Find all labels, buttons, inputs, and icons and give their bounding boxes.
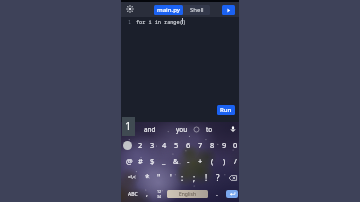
- button[interactable]: !: [200, 169, 212, 186]
- staticText: English: [179, 191, 197, 198]
- staticText: 5: [174, 140, 179, 150]
- button[interactable]: Backspace: [227, 169, 239, 186]
- staticText: $: [150, 156, 155, 166]
- button[interactable]: ,: [141, 186, 153, 202]
- button[interactable]: and: [141, 122, 159, 137]
- staticText: 6: [186, 140, 191, 150]
- button[interactable]: #: [134, 153, 146, 169]
- button[interactable]: ?: [212, 169, 224, 186]
- staticText: /: [234, 156, 237, 166]
- button[interactable]: Voice input: [229, 125, 237, 133]
- button[interactable]: 4: [158, 137, 170, 153]
- staticText: -: [187, 156, 190, 166]
- button[interactable]: More symbols: [125, 169, 139, 186]
- staticText: Run: [220, 106, 232, 114]
- staticText: ": [157, 172, 161, 183]
- staticText: 1: [125, 118, 132, 133]
- button[interactable]: @: [123, 153, 135, 169]
- staticText: ?: [216, 172, 220, 183]
- button[interactable]: ): [218, 153, 230, 169]
- staticText: 3: [150, 140, 155, 150]
- staticText: @: [126, 156, 133, 166]
- staticText: +: [198, 156, 203, 166]
- button[interactable]: :: [176, 169, 188, 186]
- button[interactable]: ;: [188, 169, 200, 186]
- staticText: 4: [162, 140, 167, 150]
- button[interactable]: 9: [218, 137, 230, 153]
- button[interactable]: $: [146, 153, 158, 169]
- button[interactable]: main.py: [154, 5, 183, 15]
- button[interactable]: 3: [146, 137, 158, 153]
- staticText: ): [223, 156, 226, 166]
- button[interactable]: .: [211, 186, 223, 202]
- button[interactable]: Numbers: [153, 186, 165, 202]
- staticText: =\<: [128, 174, 136, 181]
- staticText: Shell: [190, 6, 204, 14]
- button[interactable]: Clipboard: [193, 126, 200, 133]
- staticText: (: [211, 156, 214, 166]
- button[interactable]: _: [158, 153, 170, 169]
- button[interactable]: you: [173, 122, 191, 137]
- button[interactable]: -: [182, 153, 194, 169]
- button[interactable]: &: [170, 153, 182, 169]
- button[interactable]: 7: [194, 137, 206, 153]
- button[interactable]: Shell: [183, 5, 210, 15]
- staticText: 12: [157, 189, 162, 194]
- button[interactable]: ABC: [125, 186, 141, 202]
- staticText: ABC: [128, 191, 138, 198]
- staticText: ': [170, 172, 172, 183]
- staticText: #: [138, 156, 143, 166]
- staticText: 9: [222, 140, 227, 150]
- button[interactable]: Run program: [222, 5, 235, 15]
- staticText: *: [145, 172, 150, 183]
- staticText: 1: [128, 18, 132, 25]
- button[interactable]: 8: [206, 137, 218, 153]
- button[interactable]: 0: [229, 137, 241, 153]
- button[interactable]: 2: [134, 137, 146, 153]
- staticText: ,: [146, 189, 148, 199]
- button[interactable]: *: [141, 169, 153, 186]
- button[interactable]: /: [229, 153, 241, 169]
- staticText: 0: [233, 140, 238, 150]
- staticText: &: [173, 156, 179, 166]
- staticText: ;: [193, 172, 196, 183]
- staticText: for i in range(): [136, 18, 186, 25]
- staticText: !: [205, 172, 208, 183]
- staticText: 8: [210, 140, 215, 150]
- staticText: :: [181, 172, 184, 183]
- button[interactable]: I: [119, 122, 137, 137]
- button[interactable]: +: [194, 153, 206, 169]
- staticText: 2: [138, 140, 143, 150]
- staticText: 7: [198, 140, 203, 150]
- staticText: main.py: [157, 6, 180, 14]
- button[interactable]: Run: [217, 105, 235, 115]
- staticText: and: [144, 125, 156, 134]
- button[interactable]: ": [153, 169, 165, 186]
- staticText: _: [162, 156, 166, 166]
- button[interactable]: (: [206, 153, 218, 169]
- button[interactable]: 5: [170, 137, 182, 153]
- button[interactable]: ': [165, 169, 177, 186]
- staticText: .: [216, 189, 218, 199]
- staticText: you: [176, 125, 188, 134]
- button[interactable]: English: [167, 190, 208, 198]
- staticText: [128, 140, 130, 150]
- button[interactable]: 6: [182, 137, 194, 153]
- button[interactable]: Theme: [124, 3, 136, 15]
- staticText: I: [127, 125, 130, 134]
- button[interactable]: to: [200, 122, 218, 137]
- button[interactable]: [123, 137, 135, 153]
- button[interactable]: Enter: [226, 190, 238, 198]
- staticText: to: [206, 125, 213, 134]
- staticText: 34: [157, 194, 162, 199]
